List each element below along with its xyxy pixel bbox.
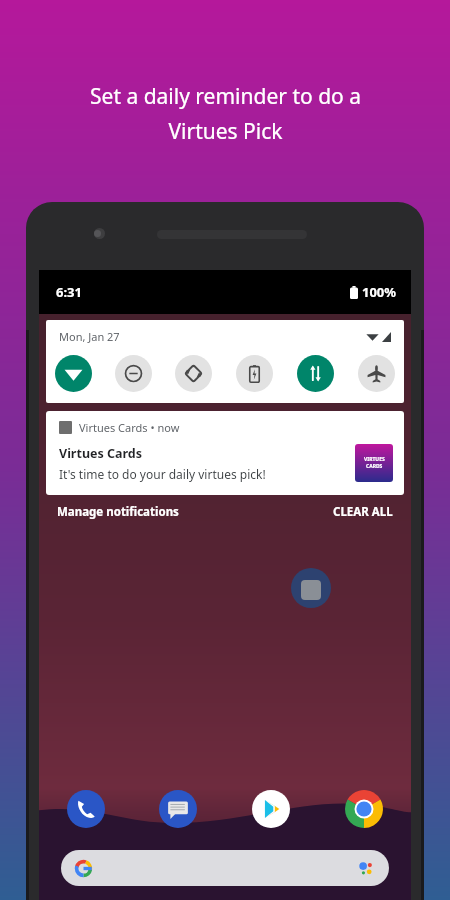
staticText: Manage notifications [57,504,179,520]
staticText: Mon, Jan 27 [59,329,120,344]
button[interactable]: App shortcut [159,790,197,828]
button[interactable]: App shortcut [345,790,383,828]
staticText: VIRTUES [364,456,385,463]
staticText: It's time to do your daily virtues pick! [59,466,266,482]
button[interactable]: Manage notifications [57,504,179,520]
button[interactable]: Quick setting toggle [358,355,395,392]
button[interactable]: App shortcut [67,790,105,828]
staticText: CLEAR ALL [333,504,393,520]
button[interactable]: Quick setting toggle [297,355,334,392]
staticText: 6:31 [56,283,82,301]
staticText: Virtues Pick [168,117,283,146]
button[interactable]: Quick setting toggle [55,355,92,392]
button[interactable]: CLEAR ALL [333,504,393,520]
staticText: Virtues Cards • now [79,420,180,435]
staticText: CARDS [366,463,383,470]
staticText: Virtues Cards [59,445,143,462]
staticText: Set a daily reminder to do a [90,82,361,111]
staticText: 100% [362,283,397,301]
button[interactable] [61,850,389,886]
button[interactable]: Virtues Cards • now [46,411,404,495]
button[interactable]: Quick setting toggle [115,355,152,392]
button[interactable]: Quick setting toggle [175,355,212,392]
button[interactable]: Quick setting toggle [236,355,273,392]
button[interactable]: App shortcut [252,790,290,828]
